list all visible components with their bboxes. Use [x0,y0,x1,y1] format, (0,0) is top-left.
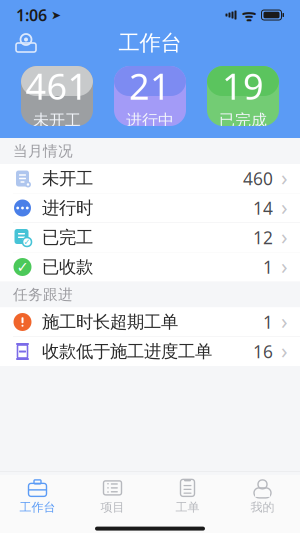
staticText: 16 [253,340,273,363]
button[interactable]: ✓ [0,252,300,281]
staticText: ✓ [23,237,30,247]
staticText: 已收款 [42,256,93,278]
staticText: › [281,336,288,365]
staticText: ᯤ [241,4,256,26]
staticText: 我的 [250,500,274,515]
staticText: › [281,163,288,192]
staticText: 工作台 [118,30,181,56]
button[interactable]: ✓ [0,223,300,252]
button[interactable]: 工单 [150,472,225,519]
button[interactable]: 21 [114,66,186,126]
button[interactable]: 461 [21,66,93,126]
staticText: ✓ [16,259,28,275]
staticText: 工作台 [19,500,55,515]
staticText: › [281,307,288,335]
staticText: 460 [243,167,273,190]
staticText: 461 [25,62,88,110]
staticText: 1 [263,255,273,278]
staticText: 21 [129,62,171,110]
staticText: 项目 [100,500,124,515]
staticText: 1:06 [16,4,47,26]
staticText: 当月情况 [13,142,73,160]
button[interactable]: 未开工 [0,164,300,193]
staticText: 任务跟进 [13,285,73,303]
staticText: 进行时 [42,197,93,219]
staticText: › [281,222,288,251]
staticText: 未开工 [42,168,93,189]
staticText: 施工时长超期工单 [42,311,178,333]
staticText: 已完成 [219,111,267,130]
staticText: › [281,193,288,221]
button[interactable]: 进行时 [0,193,300,223]
staticText: 未开工 [33,111,81,130]
staticText: › [281,252,288,280]
staticText: 19 [222,62,264,110]
staticText: 收款低于施工进度工单 [42,341,212,362]
staticText: 已完工 [42,227,93,248]
staticText: 进行中 [126,111,174,130]
staticText: 工单 [175,500,199,515]
button[interactable]: 地图 [12,32,40,54]
button[interactable]: 项目 [75,472,150,519]
staticText: 12 [253,226,273,249]
button[interactable]: 我的 [225,472,300,519]
button[interactable]: 19 [207,66,279,126]
staticText: ➤ [47,8,61,22]
button[interactable]: 工作台 [0,472,75,519]
button[interactable]: 施工时长超期工单 [0,307,300,337]
staticText: 1 [263,310,273,333]
button[interactable]: 收款低于施工进度工单 [0,337,300,366]
staticText: 14 [253,196,273,219]
